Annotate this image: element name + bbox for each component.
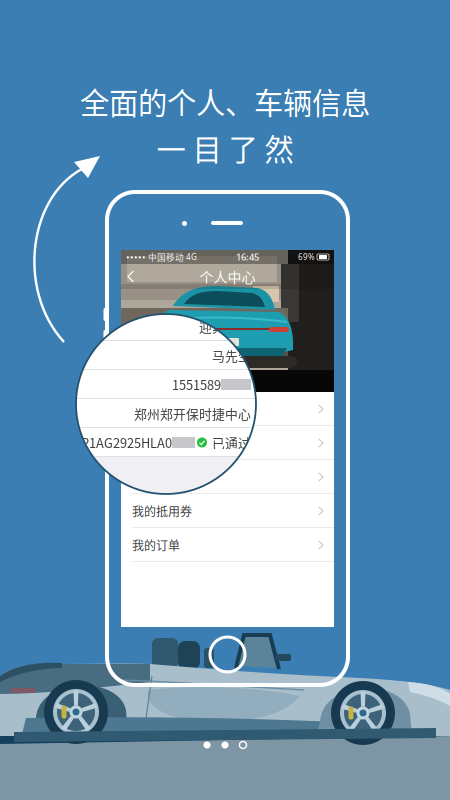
- button[interactable]: 我的抵用券: [121, 494, 334, 528]
- staticText: 我的订单: [132, 536, 180, 554]
- staticText: 已通过: [212, 433, 251, 452]
- staticText: 迎宾专享: [199, 317, 251, 336]
- staticText: 16:45: [236, 251, 259, 263]
- staticText: 4G: [186, 252, 197, 262]
- staticText: 69%: [298, 252, 315, 262]
- staticText: 郑州郑开保时捷中心: [134, 404, 251, 423]
- staticText: 全面的个人、车辆信息: [80, 80, 370, 122]
- staticText: WP1AG2925HLA0: [70, 433, 172, 452]
- staticText: 一 目 了 然: [156, 126, 293, 169]
- staticText: 马先生: [212, 346, 251, 365]
- staticText: 个人中心: [199, 266, 255, 287]
- button[interactable]: Page 3: [239, 741, 246, 748]
- staticText: 1551589: [172, 375, 221, 394]
- staticText: 中国移动: [148, 251, 184, 263]
- button[interactable]: Page 1: [203, 741, 210, 748]
- button[interactable]: [121, 460, 334, 494]
- button[interactable]: [121, 392, 334, 426]
- button[interactable]: Back: [121, 264, 141, 289]
- staticText: 我的抵用券: [132, 502, 192, 520]
- button[interactable]: [121, 426, 334, 460]
- button[interactable]: 我的订单: [121, 528, 334, 562]
- button[interactable]: Page 2: [221, 741, 228, 748]
- staticText: •••••: [126, 251, 146, 263]
